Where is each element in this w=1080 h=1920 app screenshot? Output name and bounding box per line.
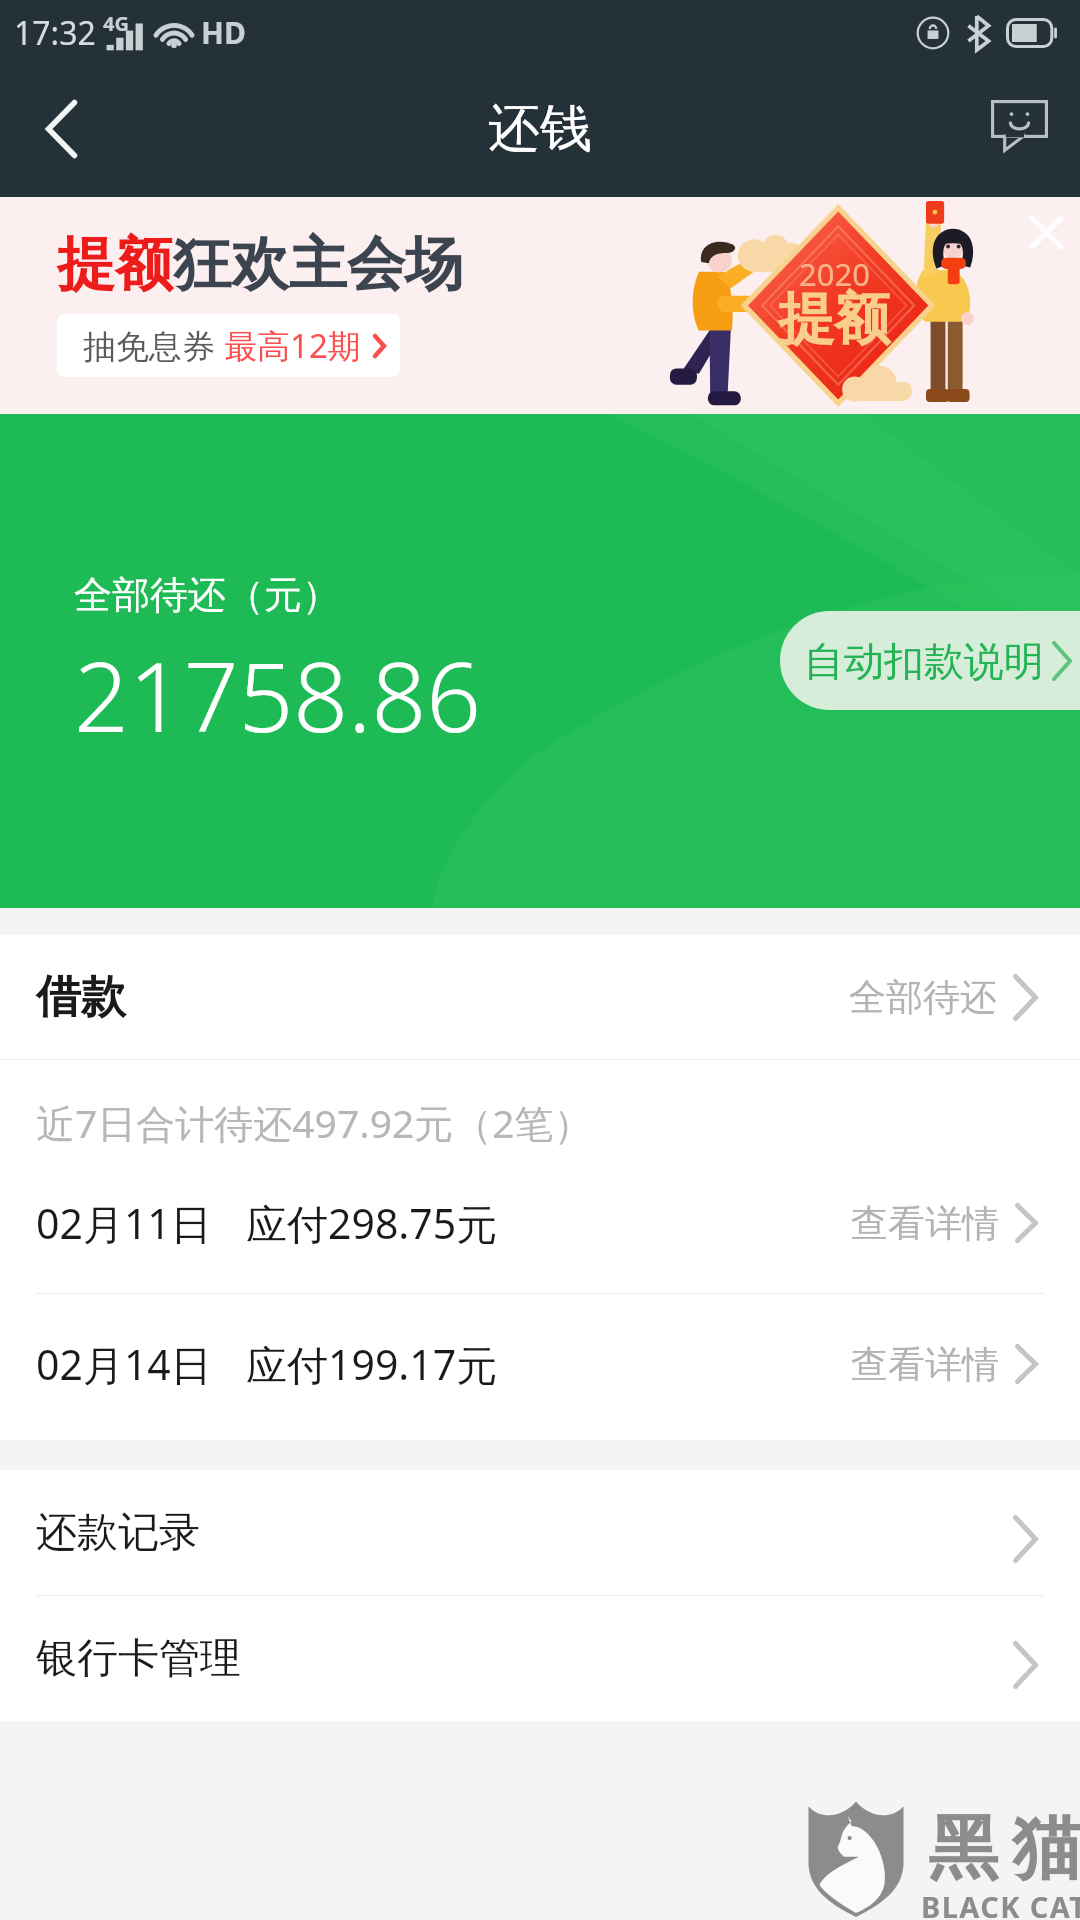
staticText: 全部待还 <box>849 974 997 1021</box>
button[interactable]: 借款 <box>0 935 1080 1059</box>
button[interactable]: 抽免息券 <box>57 314 400 377</box>
staticText: 黑猫 <box>921 1805 1080 1893</box>
staticText: 4G <box>103 10 129 37</box>
staticText: 21758.86 <box>74 629 482 760</box>
staticText: 查看详情 <box>851 1341 999 1388</box>
button[interactable]: Close banner <box>1004 190 1080 274</box>
button[interactable]: 自动扣款说明 <box>780 611 1080 710</box>
staticText: 全部待还（元） <box>74 571 340 619</box>
staticText: 提额 <box>778 284 890 355</box>
button[interactable]: 2020 <box>0 197 1080 414</box>
staticText: 17:32 <box>14 11 96 55</box>
staticText: 抽免息券 <box>83 323 224 368</box>
staticText: BLACK CAT <box>921 1887 1080 1920</box>
staticText: 狂欢主会场 <box>173 228 463 301</box>
button[interactable]: 银行卡管理 <box>0 1596 1080 1721</box>
staticText: 银行卡管理 <box>36 1633 241 1685</box>
staticText: 提额 <box>57 228 173 301</box>
button[interactable]: 02月14日 <box>0 1294 1080 1434</box>
staticText: 应付199.17元 <box>246 1336 498 1392</box>
button[interactable]: 02月11日 <box>0 1153 1080 1293</box>
staticText: 02月11日 <box>36 1195 212 1251</box>
button[interactable]: Back <box>0 70 118 197</box>
staticText: 02月14日 <box>36 1336 212 1392</box>
staticText: 应付298.75元 <box>246 1195 498 1251</box>
staticText: 2020 <box>799 253 870 295</box>
staticText: 查看详情 <box>851 1200 999 1247</box>
staticText: 还钱 <box>488 96 592 162</box>
staticText: 近7日合计待还497.92元（2笔） <box>36 1096 593 1149</box>
staticText: HD <box>201 12 246 53</box>
staticText: 还款记录 <box>36 1507 200 1559</box>
staticText: 自动扣款说明 <box>804 636 1044 686</box>
staticText: 最高12期 <box>224 323 361 368</box>
button[interactable]: 还款记录 <box>0 1470 1080 1595</box>
button[interactable]: Customer service chat <box>962 70 1080 197</box>
staticText: 借款 <box>36 969 126 1026</box>
